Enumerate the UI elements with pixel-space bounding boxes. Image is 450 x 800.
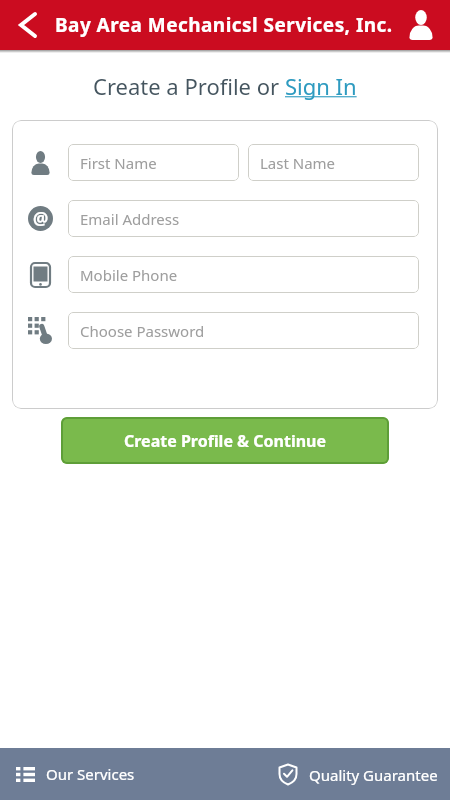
button[interactable]: Mobile Phone xyxy=(68,256,419,293)
button[interactable]: Last Name xyxy=(248,144,419,181)
staticText: Choose Password xyxy=(80,321,205,341)
staticText: Email Address xyxy=(80,209,180,229)
staticText: First Name xyxy=(80,153,157,173)
button[interactable]: Choose Password xyxy=(68,312,419,349)
button[interactable]: Quality Guarantee xyxy=(278,763,438,786)
button[interactable]: Create Profile & Continue xyxy=(61,417,389,464)
staticText: Our Services xyxy=(46,764,135,784)
button[interactable] xyxy=(14,11,42,39)
staticText: Last Name xyxy=(260,153,336,173)
staticText: Bay Area Mechanicsl Services, Inc. xyxy=(55,12,406,38)
staticText: Sign In xyxy=(285,71,357,101)
staticText: @ xyxy=(33,207,49,230)
button[interactable]: Email Address xyxy=(68,200,419,237)
staticText: Mobile Phone xyxy=(80,265,178,285)
button[interactable] xyxy=(406,10,436,40)
staticText: Quality Guarantee xyxy=(309,765,438,785)
button[interactable]: Our Services xyxy=(16,764,135,784)
button[interactable]: First Name xyxy=(68,144,239,181)
staticText: Create a Profile or xyxy=(93,71,285,101)
button[interactable]: Sign In xyxy=(285,71,357,101)
staticText: Create Profile & Continue xyxy=(124,430,327,452)
